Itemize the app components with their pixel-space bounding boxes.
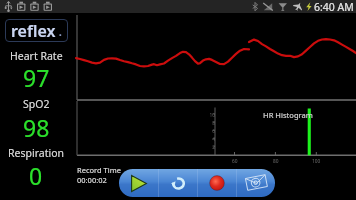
button[interactable]: Reset [159, 169, 197, 197]
staticText: 97 [23, 62, 50, 93]
staticText: Record Time [77, 165, 121, 175]
staticText: SpO2 [23, 97, 50, 111]
staticText: 4 [208, 136, 215, 143]
staticText: 0 [29, 160, 43, 191]
button[interactable]: Play [119, 169, 158, 197]
staticText: reflex [11, 20, 56, 42]
staticText: 80 [273, 158, 279, 165]
staticText: 100 [312, 158, 321, 165]
staticText: HR Histogram [263, 110, 313, 120]
staticText: 10 [208, 112, 215, 119]
staticText: Respiration [8, 146, 65, 160]
staticText: 98 [23, 112, 50, 143]
staticText: 60 [232, 158, 238, 165]
staticText: 6:40 AM [314, 0, 354, 13]
button[interactable]: Record [198, 169, 236, 197]
staticText: 00:00:02 [77, 175, 107, 185]
staticText: 2 [208, 144, 215, 151]
button[interactable]: Email [237, 169, 275, 197]
button[interactable]: reflex [5, 19, 68, 42]
staticText: Heart Rate [10, 49, 63, 63]
staticText: 6 [208, 128, 215, 135]
staticText: 8 [208, 120, 215, 127]
staticText: . [56, 24, 62, 39]
